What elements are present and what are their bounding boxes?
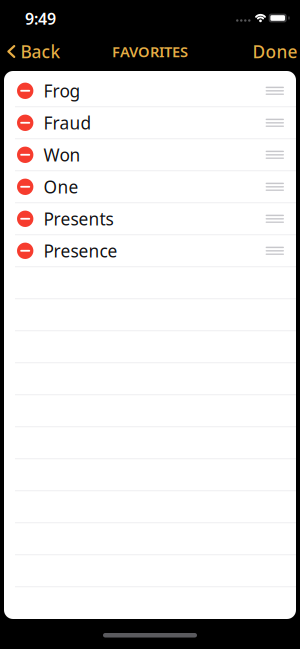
button[interactable]: Reorder Presence bbox=[266, 247, 284, 255]
button[interactable]: Delete Frog bbox=[17, 83, 33, 99]
staticText: Presence bbox=[44, 239, 118, 262]
button[interactable]: Reorder Won bbox=[266, 151, 284, 159]
button[interactable]: Reorder Presents bbox=[266, 215, 284, 223]
button[interactable]: Presence bbox=[4, 235, 296, 267]
button[interactable]: Reorder Fraud bbox=[266, 119, 284, 127]
button[interactable]: Delete Presents bbox=[17, 211, 33, 227]
staticText: Frog bbox=[44, 79, 81, 102]
staticText: Done bbox=[252, 40, 297, 63]
button[interactable]: Fraud bbox=[4, 107, 296, 139]
button[interactable]: Back bbox=[0, 40, 61, 63]
button[interactable]: Delete Presence bbox=[17, 243, 33, 259]
staticText: Presents bbox=[44, 207, 114, 230]
staticText: FAVORITES bbox=[112, 42, 188, 61]
button[interactable]: Won bbox=[4, 139, 296, 171]
staticText: Won bbox=[44, 143, 81, 166]
staticText: Back bbox=[21, 40, 61, 63]
button[interactable]: Done bbox=[252, 40, 300, 63]
button[interactable]: Delete One bbox=[17, 179, 33, 195]
staticText: Fraud bbox=[44, 111, 92, 134]
button[interactable]: Reorder One bbox=[266, 183, 284, 191]
button[interactable]: Presents bbox=[4, 203, 296, 235]
button[interactable]: Frog bbox=[4, 75, 296, 107]
staticText: One bbox=[44, 175, 79, 198]
button[interactable]: One bbox=[4, 171, 296, 203]
button[interactable]: Delete Won bbox=[17, 147, 33, 163]
button[interactable]: Reorder Frog bbox=[266, 87, 284, 95]
button[interactable]: Delete Fraud bbox=[17, 115, 33, 131]
staticText: 9:49 bbox=[25, 8, 56, 29]
